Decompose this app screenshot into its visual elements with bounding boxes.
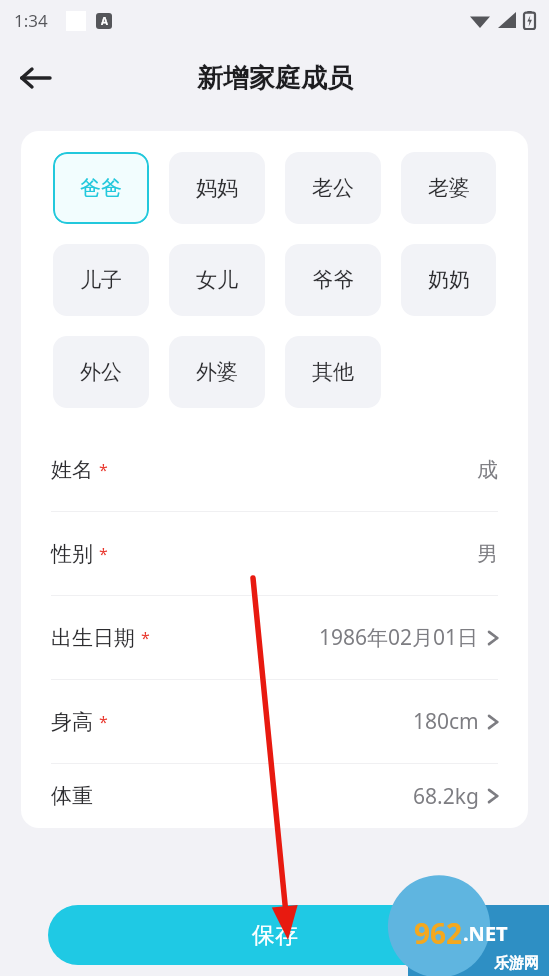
button[interactable]: 姓名 [21,428,528,511]
button[interactable]: 性别 [21,512,528,595]
staticText: 新增家庭成员 [197,62,353,95]
staticText: 乐游网 [494,954,539,973]
button[interactable]: 保存 [48,905,501,965]
staticText: 妈妈 [196,175,238,201]
staticText: 体重 [51,783,93,809]
staticText: .NET [463,920,508,947]
staticText: 1:34 [14,9,48,32]
button[interactable]: 老公 [285,152,381,224]
staticText: 老公 [312,175,354,201]
button[interactable]: 奶奶 [401,244,496,316]
staticText: 1986年02月01日 [319,623,479,652]
staticText: 962 [414,914,463,952]
button[interactable]: 老婆 [401,152,496,224]
staticText: 68.2kg [413,782,479,811]
button[interactable]: 外婆 [169,336,265,408]
staticText: 外公 [80,359,122,385]
staticText: 保存 [252,921,298,950]
button[interactable]: 其他 [285,336,381,408]
button[interactable]: 出生日期 [21,596,528,679]
staticText: * [99,543,108,565]
staticText: 出生日期 [51,625,135,651]
staticText: * [99,711,108,733]
staticText: 爸爸 [80,175,122,201]
staticText: 爷爷 [312,267,354,293]
button[interactable]: 体重 [21,764,528,828]
button[interactable]: 身高 [21,680,528,763]
staticText: 性别 [51,541,93,567]
staticText: 儿子 [80,267,122,293]
button[interactable]: 爸爸 [53,152,149,224]
button[interactable]: 儿子 [53,244,149,316]
staticText: * [141,627,150,649]
staticText: 姓名 [51,457,93,483]
staticText: 外婆 [196,359,238,385]
staticText: A [101,14,108,28]
button[interactable]: 女儿 [169,244,265,316]
staticText: 奶奶 [428,267,470,293]
staticText: * [99,459,108,481]
button[interactable]: Back [12,55,58,101]
button[interactable]: 爷爷 [285,244,381,316]
staticText: 成 [477,457,498,483]
staticText: 老婆 [428,175,470,201]
staticText: 其他 [312,359,354,385]
staticText: 180cm [413,707,479,736]
staticText: 身高 [51,709,93,735]
button[interactable]: 妈妈 [169,152,265,224]
staticText: 男 [477,541,498,567]
button[interactable]: 外公 [53,336,149,408]
staticText: 女儿 [196,267,238,293]
